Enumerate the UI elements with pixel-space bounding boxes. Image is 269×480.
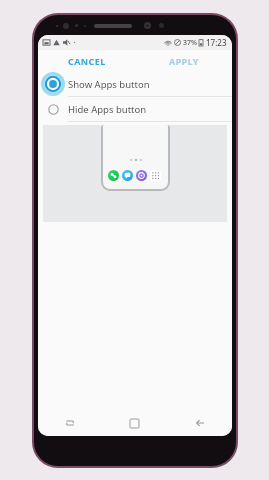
staticText: Show Apps button: [68, 78, 150, 91]
staticText: 17:23: [206, 37, 227, 48]
staticText: 37%: [183, 38, 197, 48]
staticText: CANCEL: [68, 55, 106, 67]
button[interactable]: Recents: [38, 410, 102, 436]
button[interactable]: App shortcut: [122, 170, 133, 181]
button[interactable]: APPLY: [135, 50, 232, 72]
button[interactable]: App shortcut: [136, 170, 147, 181]
button[interactable]: Apps button: [150, 170, 161, 181]
button[interactable]: App shortcut: [108, 170, 119, 181]
button[interactable]: CANCEL: [38, 50, 135, 72]
button[interactable]: Home: [102, 410, 167, 436]
button[interactable]: Show Apps button: [38, 72, 232, 96]
button[interactable]: Hide Apps button: [38, 97, 232, 121]
button[interactable]: Back: [167, 410, 232, 436]
staticText: Hide Apps button: [68, 103, 147, 116]
staticText: APPLY: [169, 55, 199, 67]
